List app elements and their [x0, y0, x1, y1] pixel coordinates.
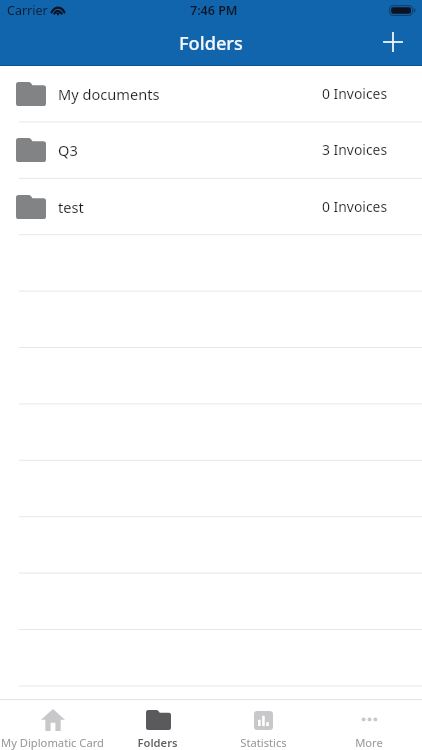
- staticText: 3 Invoices: [322, 140, 388, 159]
- staticText: 0 Invoices: [322, 197, 388, 216]
- staticText: Folders: [179, 31, 243, 56]
- button[interactable]: Statistics: [210, 700, 316, 750]
- staticText: 0 Invoices: [322, 84, 388, 103]
- staticText: 7:46 PM: [190, 2, 238, 19]
- button[interactable]: Add folder: [376, 20, 422, 66]
- staticText: Carrier: [7, 2, 48, 19]
- staticText: Statistics: [240, 735, 287, 750]
- staticText: test: [58, 197, 84, 217]
- button[interactable]: My Diplomatic Card: [0, 700, 105, 750]
- button[interactable]: Folders: [105, 700, 210, 750]
- staticText: My Diplomatic Card: [1, 735, 104, 750]
- button[interactable]: My documents: [0, 66, 422, 121]
- staticText: Folders: [137, 735, 178, 750]
- button[interactable]: test: [0, 179, 422, 234]
- staticText: My documents: [58, 84, 160, 104]
- button[interactable]: More: [316, 700, 422, 750]
- staticText: More: [355, 735, 383, 750]
- button[interactable]: Q3: [0, 122, 422, 177]
- staticText: Q3: [58, 140, 78, 160]
